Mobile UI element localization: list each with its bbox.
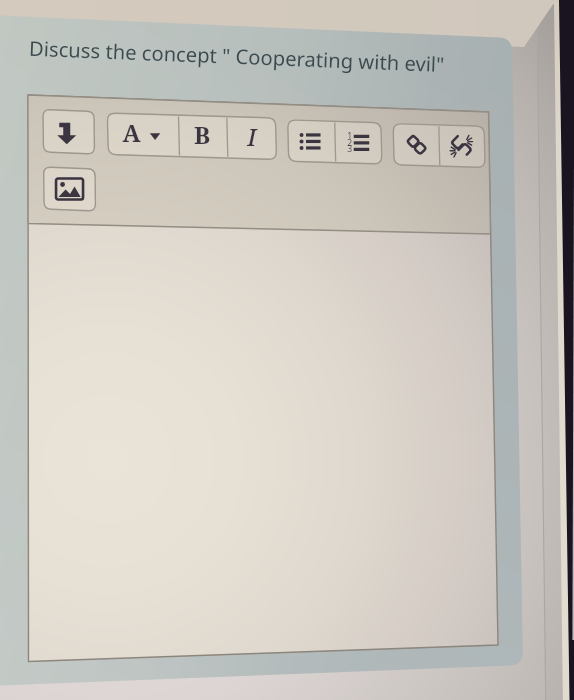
button[interactable]: Italic	[226, 117, 275, 162]
button[interactable]: Answer text area	[28, 234, 490, 644]
button[interactable]: Insert link	[394, 124, 439, 168]
button[interactable]: Remove link	[439, 125, 485, 169]
button[interactable]: Bold	[178, 115, 226, 160]
button[interactable]: Bulleted list	[288, 119, 335, 163]
button[interactable]: Numbered list	[335, 120, 383, 164]
button[interactable]: Insert image	[43, 167, 96, 211]
button[interactable]: Line break	[43, 110, 95, 155]
button[interactable]: Text colour	[108, 113, 178, 158]
